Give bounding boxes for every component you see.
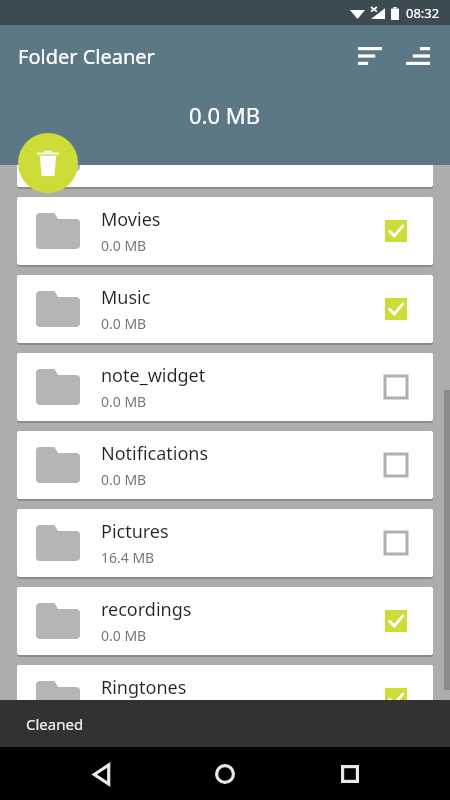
button[interactable]: Not selected [378,369,414,405]
button[interactable]: note_widget [17,353,433,421]
staticText: Folder Cleaner [18,43,155,70]
button[interactable]: Pictures [17,509,433,577]
button[interactable]: Selected [378,135,414,171]
staticText: 0.0 MB [189,100,261,130]
button[interactable]: Selected [378,681,414,717]
staticText: Movies [101,207,161,232]
staticText: Notifications [101,441,209,466]
button[interactable]: Home [201,750,249,798]
button[interactable]: Selected [378,213,414,249]
staticText: recordings [101,597,192,622]
staticText: Pictures [101,519,169,544]
button[interactable]: Ringtones [17,665,433,733]
staticText: Ringtones [101,675,187,700]
staticText: 16.4 MB [101,548,155,567]
staticText: 0.0 MB [101,626,147,645]
button[interactable]: Notifications [17,431,433,499]
staticText: 08:32 [406,4,440,22]
staticText: Music [101,285,151,310]
button[interactable]: Not selected [378,525,414,561]
staticText: Cleaned [26,714,84,734]
button[interactable]: recordings [17,587,433,655]
staticText: 0.0 MB [101,314,147,333]
staticText: note_widget [101,363,206,388]
staticText: 0.0 MB [101,236,147,255]
staticText: 0.0 MB [101,470,147,489]
button[interactable]: Sort [346,32,394,80]
button[interactable]: Clean [18,133,78,193]
button[interactable]: Selected [378,291,414,327]
staticText: 0.0 MB [101,392,147,411]
button[interactable]: Recents [326,750,374,798]
button[interactable]: Filter [394,32,442,80]
button[interactable]: Back [77,750,125,798]
button[interactable]: 0.0 MB [17,119,433,187]
button[interactable]: Not selected [378,447,414,483]
button[interactable]: Music [17,275,433,343]
button[interactable]: Movies [17,197,433,265]
button[interactable]: Selected [378,603,414,639]
